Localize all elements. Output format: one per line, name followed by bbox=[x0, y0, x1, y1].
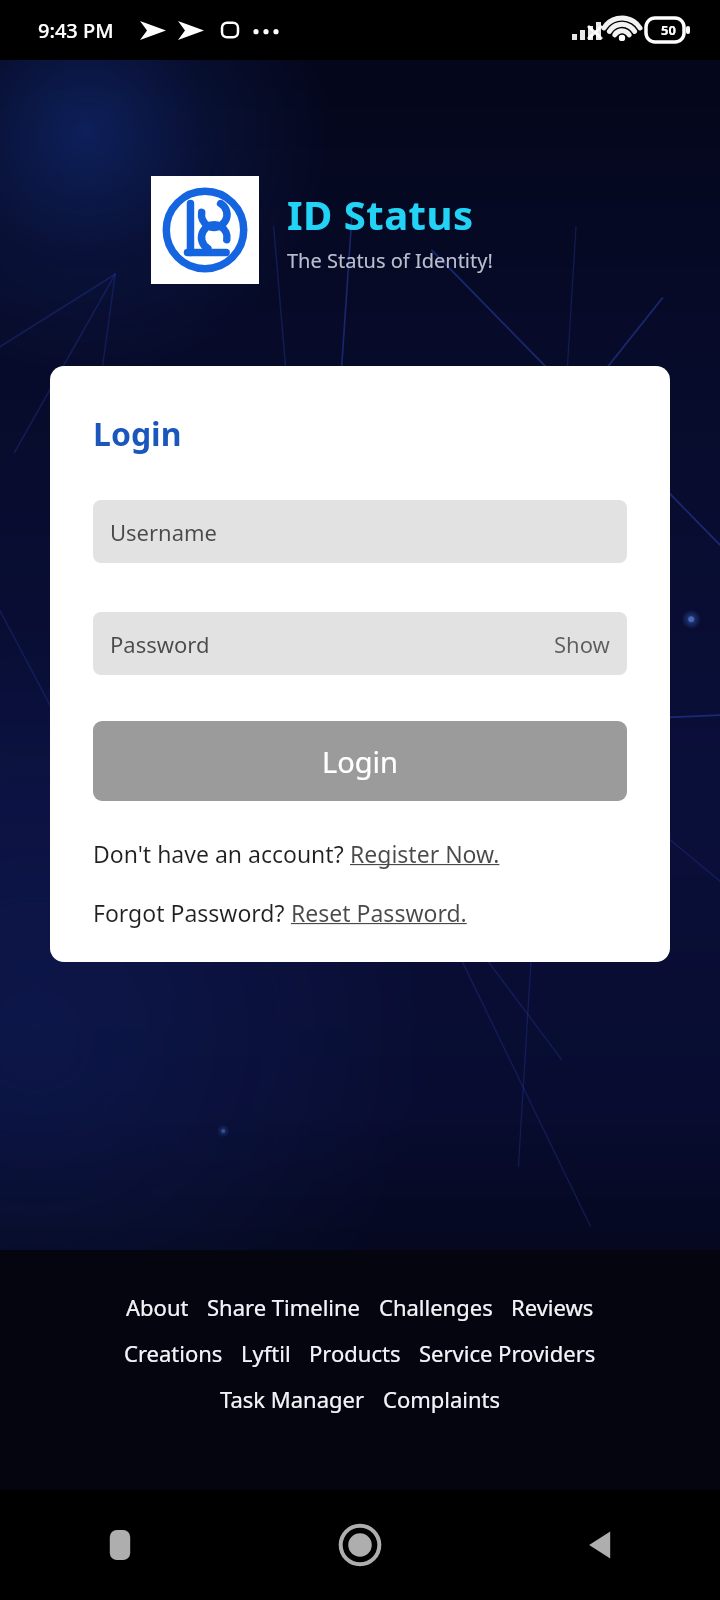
staticText: Service Providers bbox=[419, 1338, 596, 1368]
button[interactable]: Complaints bbox=[374, 1380, 510, 1418]
button[interactable]: Reset Password. bbox=[291, 897, 467, 928]
staticText: 50 bbox=[661, 21, 676, 39]
button[interactable]: Challenges bbox=[370, 1288, 502, 1326]
staticText: 9:43 PM bbox=[38, 17, 114, 44]
staticText: Lyftil bbox=[241, 1338, 291, 1368]
staticText: Reset Password. bbox=[291, 897, 467, 928]
staticText: Login bbox=[93, 412, 182, 456]
button[interactable]: Creations bbox=[115, 1334, 232, 1372]
staticText: About bbox=[126, 1292, 189, 1322]
staticText: Forgot Password? bbox=[93, 897, 291, 928]
staticText: The Status of Identity! bbox=[287, 247, 493, 274]
staticText: ID Status bbox=[287, 187, 474, 241]
staticText: Challenges bbox=[379, 1292, 493, 1322]
button[interactable]: Show bbox=[554, 629, 610, 659]
button[interactable]: Products bbox=[300, 1334, 410, 1372]
button[interactable]: Service Providers bbox=[410, 1334, 605, 1372]
staticText: Don't have an account? bbox=[93, 838, 350, 869]
button[interactable]: Reviews bbox=[502, 1288, 603, 1326]
button[interactable]: Register Now. bbox=[350, 838, 500, 869]
staticText: Register Now. bbox=[350, 838, 500, 869]
staticText: Creations bbox=[124, 1338, 223, 1368]
staticText: Task Manager bbox=[220, 1384, 365, 1414]
button[interactable]: Username bbox=[93, 500, 627, 563]
staticText: Share Timeline bbox=[207, 1292, 361, 1322]
button[interactable]: Login bbox=[93, 721, 627, 801]
button[interactable]: Back bbox=[480, 1490, 720, 1600]
staticText: Login bbox=[322, 742, 398, 781]
staticText: Show bbox=[554, 629, 610, 659]
staticText: Password bbox=[110, 629, 210, 659]
button[interactable]: Lyftil bbox=[232, 1334, 300, 1372]
button[interactable]: Task Manager bbox=[211, 1380, 374, 1418]
button[interactable]: Share Timeline bbox=[198, 1288, 370, 1326]
staticText: Reviews bbox=[511, 1292, 594, 1322]
staticText: Username bbox=[110, 517, 218, 547]
button[interactable]: Home bbox=[240, 1490, 480, 1600]
staticText: Complaints bbox=[383, 1384, 501, 1414]
button[interactable]: Password bbox=[93, 612, 627, 675]
staticText: Products bbox=[309, 1338, 401, 1368]
button[interactable]: About bbox=[117, 1288, 198, 1326]
button[interactable]: Recent apps bbox=[0, 1490, 240, 1600]
